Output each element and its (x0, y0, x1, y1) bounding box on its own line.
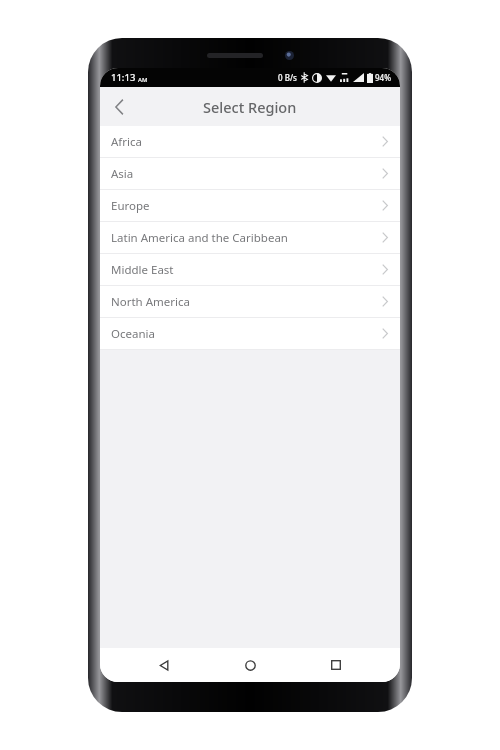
staticText: 0 B/s (278, 72, 297, 83)
button[interactable]: Recent apps (314, 648, 358, 682)
button[interactable]: Back (100, 87, 138, 126)
button[interactable]: Latin America and the Caribbean (100, 222, 400, 253)
staticText: North America (111, 294, 190, 310)
staticText: Europe (111, 198, 150, 214)
staticText: Latin America and the Caribbean (111, 230, 288, 246)
staticText: Middle East (111, 262, 174, 278)
staticText: Asia (111, 166, 134, 182)
staticText: AM (138, 76, 148, 84)
staticText: Africa (111, 134, 142, 150)
button[interactable]: Asia (100, 158, 400, 189)
button[interactable]: North America (100, 286, 400, 317)
staticText: Oceania (111, 326, 155, 342)
button[interactable]: Middle East (100, 254, 400, 285)
staticText: 94% (375, 72, 391, 83)
staticText: Select Region (203, 97, 297, 117)
button[interactable]: Europe (100, 190, 400, 221)
button[interactable]: Africa (100, 126, 400, 157)
button[interactable]: Home (228, 648, 272, 682)
button[interactable]: Back (142, 648, 186, 682)
button[interactable]: Oceania (100, 318, 400, 349)
staticText: 11:13 (111, 71, 136, 84)
